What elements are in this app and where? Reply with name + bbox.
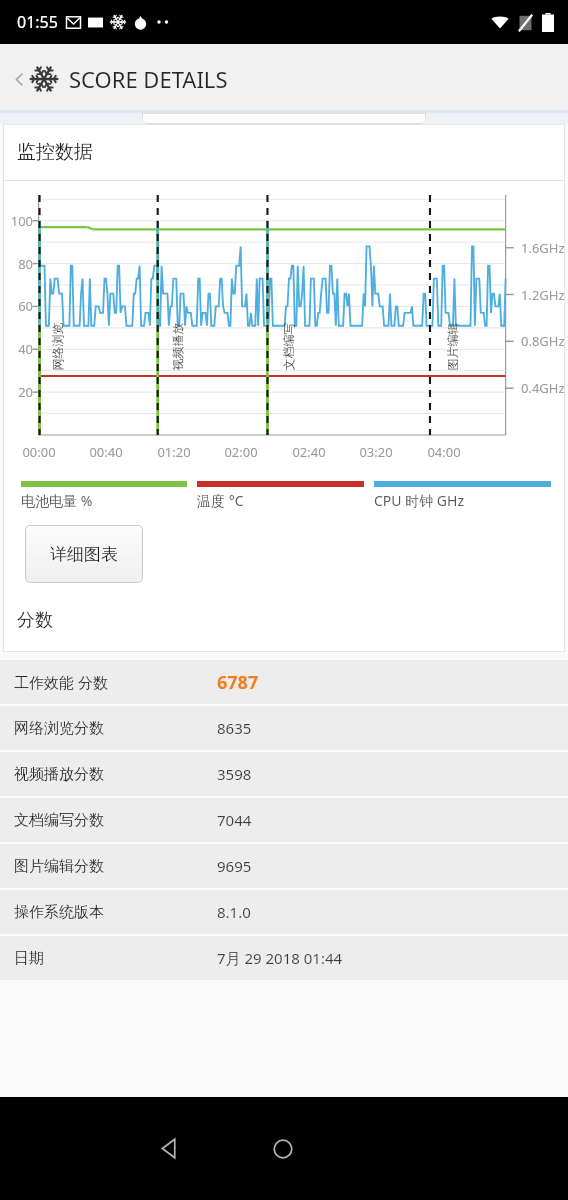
staticText: 20 [3,383,33,401]
staticText: 详细图表 [50,544,118,565]
staticText: CPU 时钟 GHz [374,491,464,510]
staticText: 04:00 [422,443,466,461]
staticText: 02:00 [219,443,263,461]
button[interactable]: 视频播放分数 [0,752,568,796]
button[interactable]: 详细图表 [25,525,143,583]
staticText: 文档编写 [280,322,295,370]
staticText: 视频播放 [169,322,184,370]
staticText: 视频播放分数 [14,765,104,784]
staticText: 03:20 [354,443,398,461]
staticText: 8.1.0 [217,902,251,922]
button[interactable]: 网络浏览分数 [0,706,568,750]
staticText: SCORE DETAILS [69,64,228,94]
staticText: 80 [3,255,33,273]
staticText: 电池电量 % [21,491,93,510]
staticText: 3598 [217,764,252,784]
staticText: 00:00 [17,443,61,461]
button[interactable]: Back [113,1097,226,1200]
staticText: 6787 [217,670,259,695]
staticText: 01:20 [152,443,196,461]
staticText: 1.6GHz [521,239,568,257]
staticText: 网络浏览 [49,322,64,370]
staticText: 图片编辑 [444,322,459,370]
staticText: 文档编写分数 [14,811,104,830]
staticText: 工作效能 分数 [14,672,108,692]
staticText: 7月 29 2018 01:44 [217,948,343,968]
staticText: 8635 [217,718,252,738]
staticText: 02:40 [287,443,331,461]
staticText: 9695 [217,856,252,876]
staticText: 00:40 [84,443,128,461]
staticText: 100 [3,212,33,230]
button[interactable]: Back [6,56,236,102]
staticText: 1.2GHz [521,286,568,304]
button[interactable]: Home [226,1097,340,1200]
staticText: 操作系统版本 [14,903,104,922]
staticText: 40 [3,340,33,358]
staticText: 60 [3,297,33,315]
staticText: 分数 [17,609,53,632]
staticText: 温度 °C [197,491,244,510]
button[interactable]: 图片编辑分数 [0,844,568,888]
staticText: 网络浏览分数 [14,719,104,738]
button[interactable]: 日期 [0,936,568,980]
staticText: 01:55 [17,11,58,33]
staticText: 日期 [14,949,44,968]
staticText: 0.8GHz [521,332,568,350]
staticText: 0.4GHz [521,379,568,397]
staticText: 图片编辑分数 [14,857,104,876]
staticText: 7044 [217,810,252,830]
staticText: 监控数据 [17,140,93,164]
button[interactable]: 操作系统版本 [0,890,568,934]
button[interactable]: 文档编写分数 [0,798,568,842]
button[interactable]: 工作效能 分数 [0,660,568,704]
